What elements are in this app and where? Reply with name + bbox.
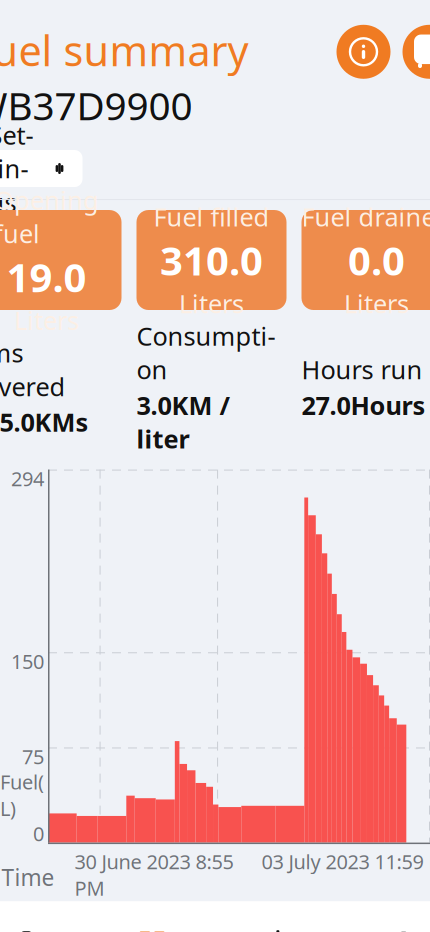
staticText: 27.0Hours <box>301 388 425 422</box>
staticText: 310.0 <box>160 233 263 287</box>
staticText: 0.0 <box>348 233 405 287</box>
button[interactable]: Opening fuel <box>0 210 121 310</box>
staticText: 75 <box>22 743 44 770</box>
staticText: Fuel summary <box>0 23 248 78</box>
staticText: Hours run <box>301 353 422 386</box>
staticText: WB37D9900 <box>0 80 192 131</box>
staticText: Kms covered <box>0 336 65 403</box>
staticText: Fuel drained <box>301 200 430 233</box>
button[interactable]: Home <box>0 917 89 932</box>
staticText: Time <box>1 862 54 892</box>
staticText: 150 <box>11 648 44 675</box>
staticText: Liters <box>14 303 79 337</box>
staticText: 725.0KMs <box>0 405 88 439</box>
staticText: 3.0KM / liter <box>136 388 230 456</box>
staticText: Liters <box>344 287 409 320</box>
staticText: Fuel(L) <box>0 768 44 822</box>
staticText: Consumption <box>136 319 275 386</box>
staticText: Settings <box>0 118 33 219</box>
button[interactable]: Fuel drained <box>301 210 430 310</box>
staticText: 19.0 <box>6 250 86 303</box>
staticText: 03 July 2023 11:59 PM <box>261 848 430 875</box>
button[interactable]: Dashboard <box>89 917 215 932</box>
staticText: Liters <box>179 287 244 320</box>
button[interactable]: Settings <box>341 917 430 932</box>
button[interactable]: Fuel filled <box>136 210 286 310</box>
staticText: Opening fuel <box>0 183 99 250</box>
staticText: 30 June 2023 8:55 PM <box>74 848 233 901</box>
staticText: 0 <box>33 820 44 847</box>
button[interactable]: Settings <box>0 150 82 187</box>
button[interactable]: Notifications <box>215 917 341 932</box>
staticText: Fuel filled <box>153 200 269 233</box>
button[interactable]: Select vehicle <box>402 25 430 79</box>
staticText: 294 <box>11 465 44 492</box>
button[interactable]: Information <box>336 25 390 79</box>
